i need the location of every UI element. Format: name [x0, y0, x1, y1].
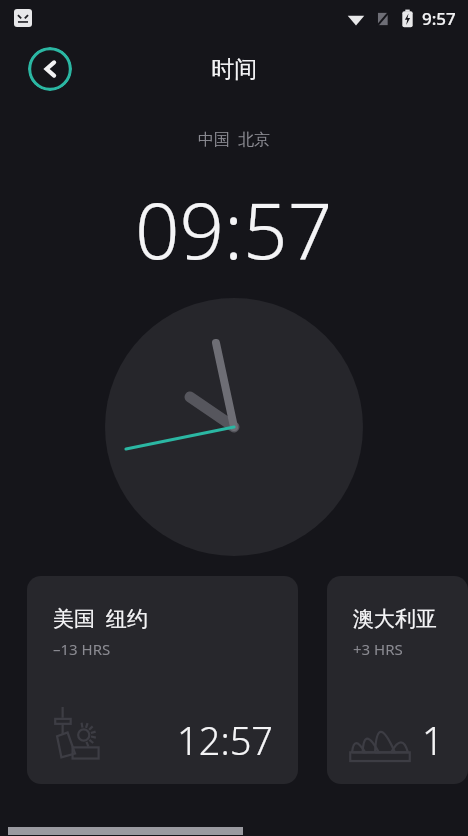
staticText: 中国 北京: [198, 128, 271, 150]
staticText: 12:57: [177, 714, 274, 766]
button[interactable]: 美国 纽约: [27, 576, 298, 784]
staticText: 9:57: [422, 7, 456, 30]
staticText: –13 HRS: [53, 639, 111, 659]
button[interactable]: 返回: [28, 47, 72, 91]
staticText: 澳大利亚 悉尼: [353, 604, 468, 633]
staticText: 1: [422, 714, 444, 766]
staticText: 美国 纽约: [53, 604, 148, 633]
button[interactable]: 澳大利亚 悉尼: [327, 576, 468, 784]
staticText: +3 HRS: [353, 639, 403, 659]
staticText: 时间: [211, 55, 257, 84]
staticText: 09:57: [135, 176, 333, 282]
